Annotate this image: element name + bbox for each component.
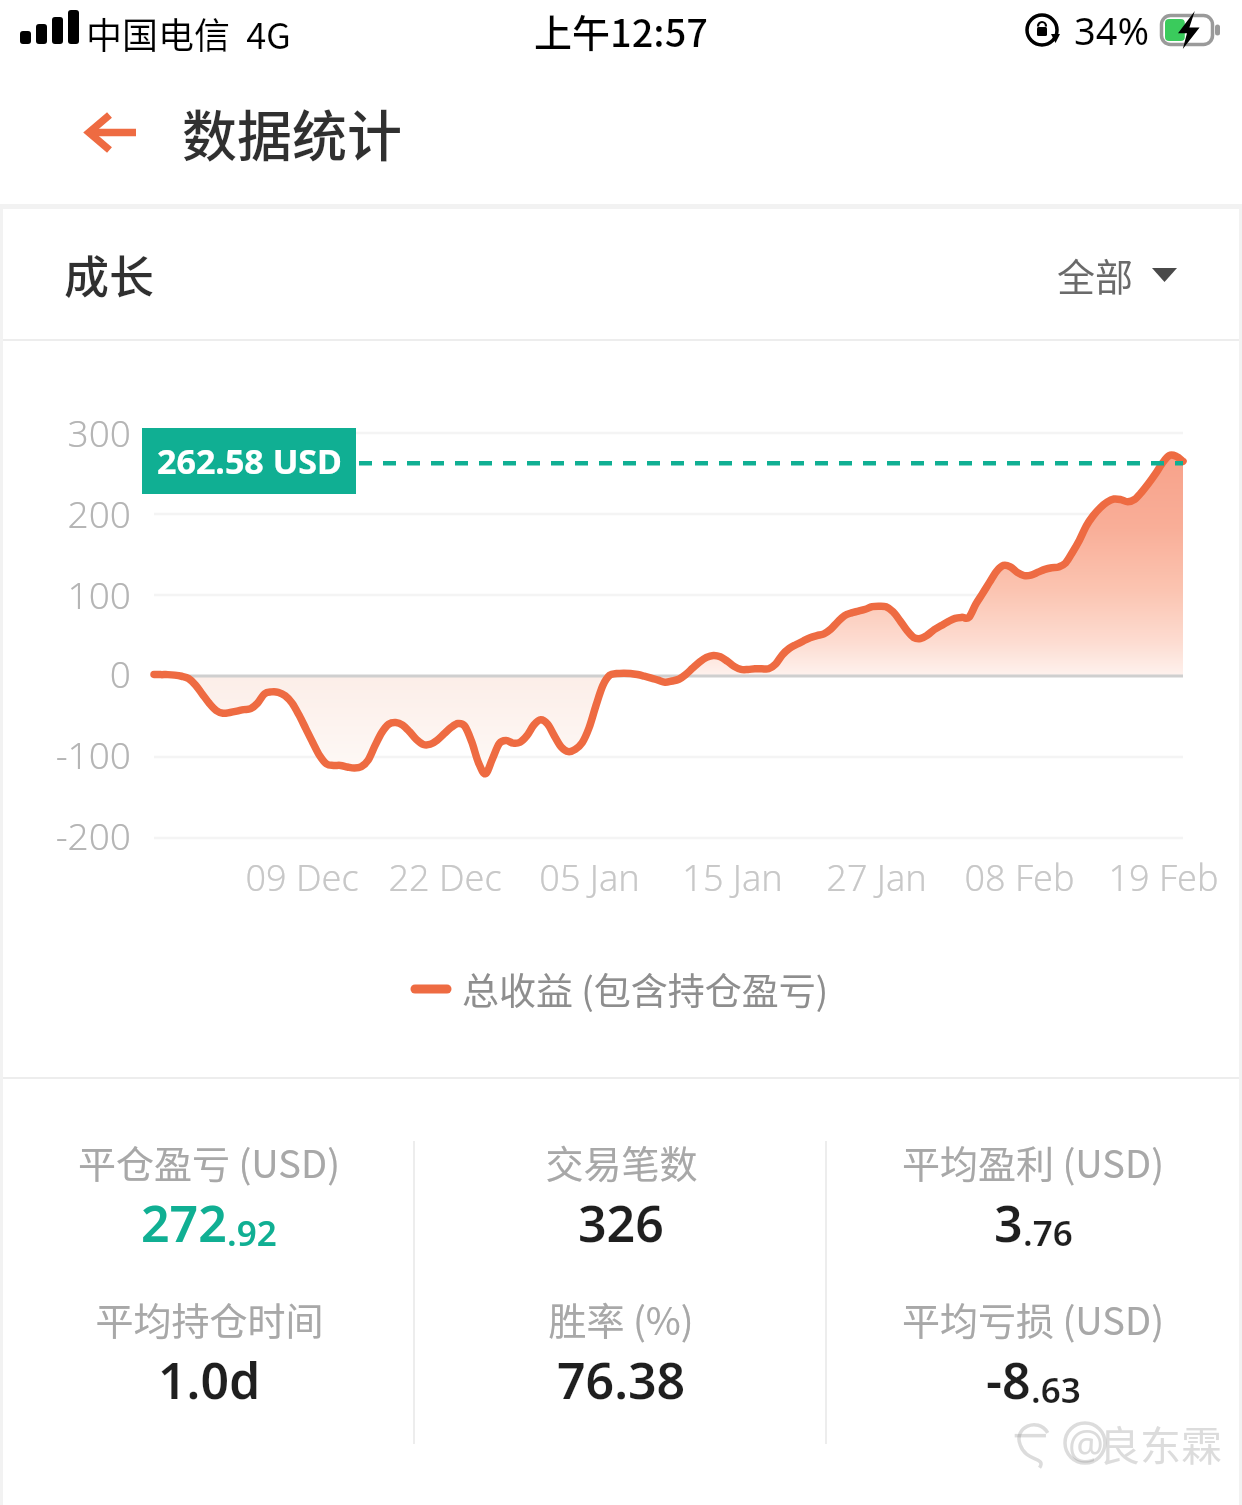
staticText: 全部 [1057,247,1134,302]
staticText: 胜率 (%) [548,1291,694,1346]
staticText: 200 [67,488,131,538]
button[interactable]: Back [56,77,166,187]
staticText: 19 Feb [1108,853,1219,902]
staticText: 100 [67,569,131,619]
staticText: .63 [1031,1366,1081,1414]
button[interactable]: 交易笔数 [415,1117,827,1273]
staticText: -200 [55,810,131,860]
staticText: 27 Jan [826,853,927,902]
staticText: 272 [141,1189,227,1257]
staticText: 上午12:57 [534,3,708,58]
staticText: 1.0d [158,1346,261,1414]
staticText: 300 [67,407,131,457]
staticText: 08 Feb [964,853,1075,902]
staticText: 平均盈利 (USD) [902,1134,1164,1189]
staticText: 成长 [64,242,155,307]
button[interactable]: 平均盈利 (USD) [827,1117,1239,1273]
staticText: 05 Jan [539,853,640,902]
button[interactable]: Filter: all [1057,247,1177,302]
staticText: 良东霖 [1099,1413,1222,1472]
button[interactable]: 平仓盈亏 (USD) [3,1117,415,1273]
staticText: 15 Jan [682,853,783,902]
staticText: 平均持仓时间 [95,1291,324,1346]
staticText: 平均亏损 (USD) [902,1291,1164,1346]
staticText: -8 [986,1346,1031,1414]
staticText: 22 Dec [388,853,502,902]
staticText: .76 [1023,1209,1073,1257]
staticText: 09 Dec [245,853,359,902]
staticText: 76.38 [557,1346,686,1414]
staticText: 数据统计 [182,92,403,172]
staticText: 总收益 (包含持仓盈亏) [462,962,829,1016]
staticText: .92 [227,1209,277,1257]
staticText: 3 [994,1189,1023,1257]
staticText: 326 [578,1189,664,1257]
button[interactable]: 平均持仓时间 [3,1274,415,1430]
staticText: 交易笔数 [545,1134,698,1189]
staticText: @ [1068,1416,1104,1470]
staticText: -100 [55,729,131,779]
staticText: 34% [1074,4,1150,56]
staticText: 0 [109,648,131,698]
staticText: 平仓盈亏 (USD) [78,1134,340,1189]
button[interactable]: 胜率 (%) [415,1274,827,1430]
staticText: 262.58 USD [157,438,342,484]
button[interactable]: 平均亏损 (USD) [827,1274,1239,1430]
staticText: 中国电信 4G [86,7,291,59]
